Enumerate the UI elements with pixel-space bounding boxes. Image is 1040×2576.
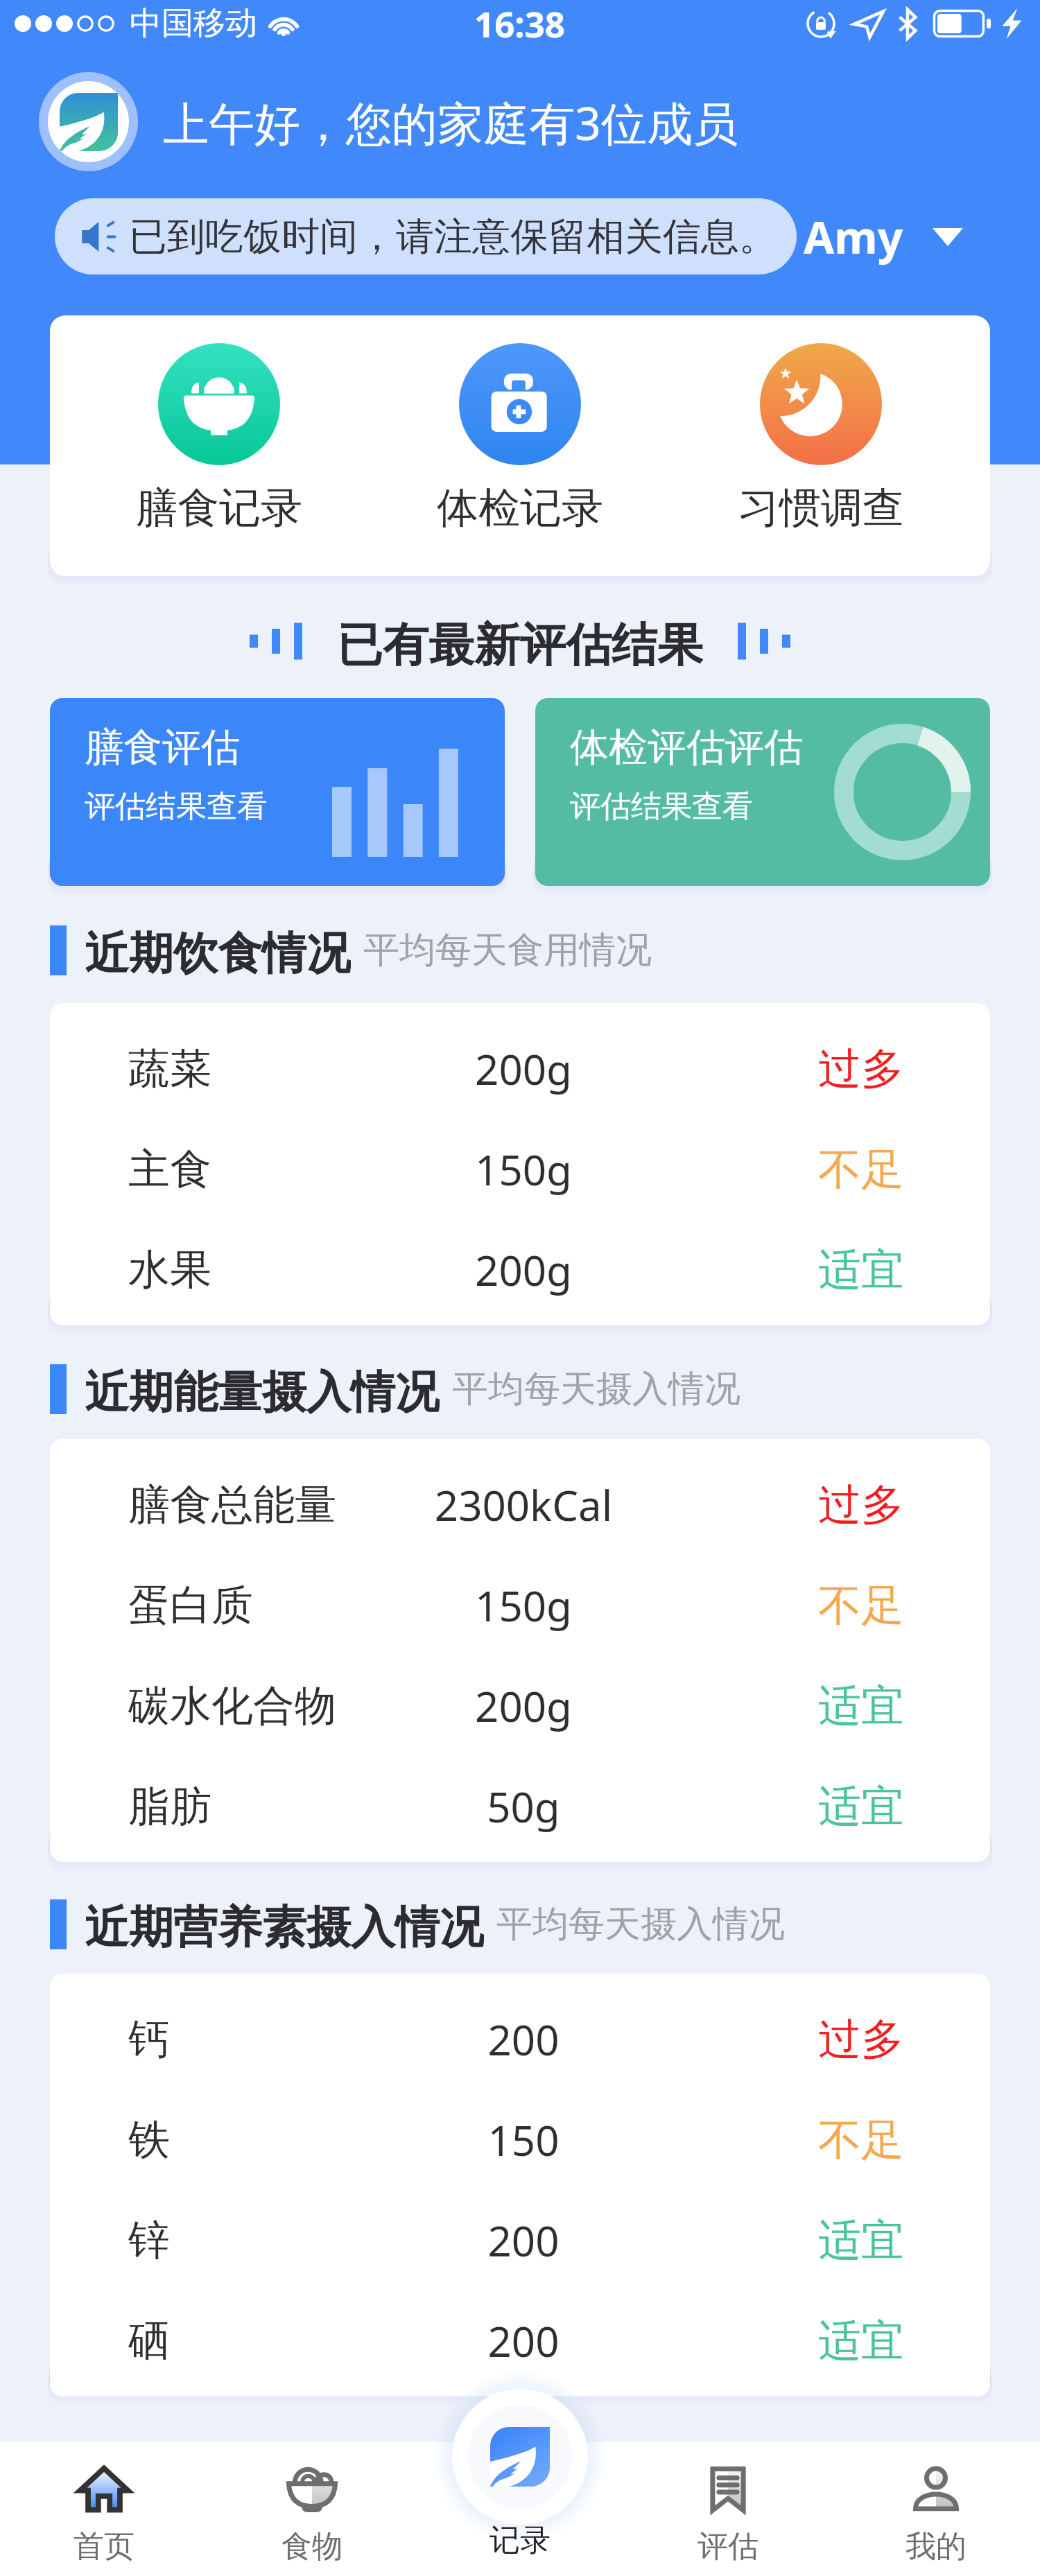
staticText: 评估结果查看 <box>570 787 753 826</box>
staticText: 近期饮食情况 <box>85 925 351 975</box>
button[interactable]: 体检评估评估 <box>535 698 990 886</box>
button[interactable]: 已到吃饭时间，请注意保留相关信息。 <box>55 198 797 275</box>
staticText: 我的 <box>905 2527 967 2566</box>
staticText: 膳食记录 <box>136 482 302 534</box>
button[interactable]: 锌 <box>50 2190 990 2290</box>
button[interactable]: 体检记录 <box>388 343 652 534</box>
staticText: 50g <box>364 1778 683 1835</box>
staticText: 平均每天食用情况 <box>363 928 652 973</box>
button[interactable]: 硒 <box>50 2290 990 2391</box>
staticText: 脂肪 <box>128 1780 364 1833</box>
staticText: 评估结果查看 <box>85 787 268 826</box>
staticText: 150 <box>364 2112 683 2168</box>
staticText: 记录 <box>489 2521 551 2559</box>
staticText: 已有最新评估结果 <box>337 616 703 666</box>
staticText: 体检评估评估 <box>570 723 803 772</box>
staticText: 200g <box>364 1041 683 1097</box>
staticText: 碳水化合物 <box>128 1680 364 1732</box>
staticText: 200g <box>364 1242 683 1298</box>
staticText: 已到吃饭时间，请注意保留相关信息。 <box>129 213 777 261</box>
staticText: 首页 <box>73 2527 135 2566</box>
staticText: 体检记录 <box>437 482 603 534</box>
staticText: 不足 <box>683 1578 904 1633</box>
button[interactable]: Amy <box>797 201 971 272</box>
button[interactable]: 蛋白质 <box>50 1555 990 1655</box>
staticText: 16:38 <box>474 0 566 46</box>
staticText: 锌 <box>128 2214 364 2267</box>
button[interactable]: 记录 <box>489 2518 551 2576</box>
staticText: Amy <box>804 207 903 267</box>
button[interactable]: 主食 <box>50 1119 990 1219</box>
staticText: 钙 <box>128 2013 364 2066</box>
staticText: 主食 <box>128 1143 364 1196</box>
staticText: 上午好，您的家庭有3位成员 <box>163 91 738 153</box>
staticText: 过多 <box>683 1478 904 1532</box>
staticText: 膳食总能量 <box>128 1479 364 1531</box>
staticText: 2300kCal <box>364 1477 683 1533</box>
staticText: 近期能量摄入情况 <box>85 1364 440 1414</box>
staticText: 平均每天摄入情况 <box>452 1366 740 1412</box>
button[interactable]: 铁 <box>50 2089 990 2190</box>
staticText: 过多 <box>683 2012 904 2066</box>
staticText: 适宜 <box>683 2314 904 2368</box>
button[interactable]: 膳食评估 <box>50 698 505 886</box>
staticText: 近期营养素摄入情况 <box>85 1899 484 1949</box>
staticText: 蔬菜 <box>128 1043 364 1095</box>
staticText: 200 <box>364 2212 683 2269</box>
button[interactable]: 首页 <box>0 2442 208 2566</box>
staticText: 评估 <box>697 2527 759 2566</box>
button[interactable]: 食物 <box>208 2442 416 2566</box>
button[interactable]: 评估 <box>624 2442 832 2566</box>
button[interactable]: 膳食记录 <box>87 343 351 534</box>
staticText: 蛋白质 <box>128 1579 364 1632</box>
staticText: 适宜 <box>683 1779 904 1834</box>
other: Switch member <box>933 228 963 246</box>
staticText: 150g <box>364 1577 683 1634</box>
staticText: 适宜 <box>683 1243 904 1297</box>
staticText: 不足 <box>683 2113 904 2167</box>
staticText: 铁 <box>128 2114 364 2166</box>
staticText: 膳食评估 <box>85 723 240 772</box>
button[interactable]: 碳水化合物 <box>50 1655 990 1756</box>
staticText: 硒 <box>128 2315 364 2367</box>
staticText: 过多 <box>683 1042 904 1096</box>
staticText: 水果 <box>128 1244 364 1296</box>
staticText: 中国移动 <box>130 3 257 44</box>
staticText: 适宜 <box>683 2213 904 2268</box>
button[interactable]: 脂肪 <box>50 1756 990 1856</box>
staticText: 200 <box>364 2011 683 2068</box>
staticText: 食物 <box>281 2527 343 2566</box>
staticText: 适宜 <box>683 1679 904 1733</box>
staticText: 习惯调查 <box>738 482 904 534</box>
staticText: 200g <box>364 1678 683 1734</box>
staticText: 200 <box>364 2313 683 2369</box>
staticText: 不足 <box>683 1142 904 1196</box>
button[interactable]: 水果 <box>50 1219 990 1320</box>
button[interactable]: 钙 <box>50 1989 990 2089</box>
button[interactable]: 习惯调查 <box>689 343 953 534</box>
button[interactable]: 蔬菜 <box>50 1018 990 1119</box>
button[interactable]: 膳食总能量 <box>50 1454 990 1555</box>
button[interactable]: 我的 <box>832 2442 1040 2566</box>
staticText: 平均每天摄入情况 <box>496 1901 785 1947</box>
staticText: 150g <box>364 1141 683 1198</box>
